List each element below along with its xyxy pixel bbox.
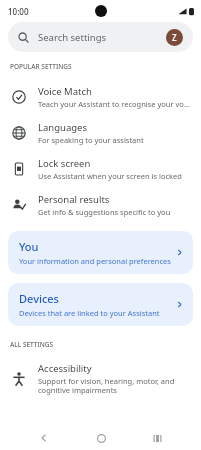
button[interactable]: Lock screen [0, 151, 201, 187]
staticText: Personal results [38, 193, 110, 206]
button[interactable]: Home [88, 426, 114, 450]
button[interactable]: Voice Match [0, 79, 201, 115]
button[interactable]: Personal results [0, 187, 201, 223]
button[interactable]: Search settings [8, 22, 193, 52]
staticText: Use Assistant when your screen is locked [38, 171, 182, 181]
staticText: Voice Match [38, 85, 92, 98]
staticText: Accessibility [38, 362, 92, 375]
button[interactable]: Account [166, 29, 183, 46]
staticText: POPULAR SETTINGS [10, 62, 72, 71]
staticText: Your information and personal preference… [19, 256, 171, 266]
staticText: Lock screen [38, 157, 91, 170]
staticText: ALL SETTINGS [10, 340, 54, 349]
staticText: For speaking to your assistant [38, 135, 144, 145]
button[interactable]: Recent apps [144, 426, 170, 450]
button[interactable]: Back [31, 426, 57, 450]
staticText: Devices that are linked to your Assistan… [19, 308, 160, 318]
button[interactable]: Devices [8, 283, 193, 326]
staticText: Languages [38, 121, 87, 134]
staticText: 10:00 [8, 6, 29, 17]
button[interactable]: Accessibility [0, 356, 201, 401]
staticText: Search settings [38, 31, 166, 44]
staticText: Get info & suggestions specific to you [38, 207, 171, 217]
staticText: You [19, 239, 39, 254]
staticText: Devices [19, 291, 59, 306]
staticText: Z [172, 32, 177, 43]
staticText: Support for vision, hearing, motor, and … [38, 376, 191, 395]
button[interactable]: You [8, 231, 193, 274]
button[interactable]: Languages [0, 115, 201, 151]
staticText: Teach your Assistant to recognise your v… [38, 99, 191, 109]
